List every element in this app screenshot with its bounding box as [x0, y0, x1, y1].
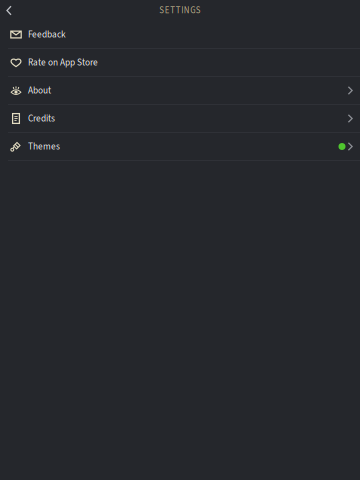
- staticText: Credits: [28, 112, 55, 125]
- button[interactable]: Back: [0, 0, 20, 21]
- staticText: Themes: [28, 140, 60, 153]
- button[interactable]: Themes: [0, 133, 360, 161]
- button[interactable]: Credits: [0, 105, 360, 133]
- button[interactable]: About: [0, 77, 360, 105]
- button[interactable]: Rate on App Store: [0, 49, 360, 77]
- staticText: Rate on App Store: [28, 56, 98, 69]
- staticText: Feedback: [28, 28, 66, 41]
- staticText: SETTINGS: [159, 4, 201, 17]
- button[interactable]: Feedback: [0, 21, 360, 49]
- staticText: About: [28, 84, 51, 97]
